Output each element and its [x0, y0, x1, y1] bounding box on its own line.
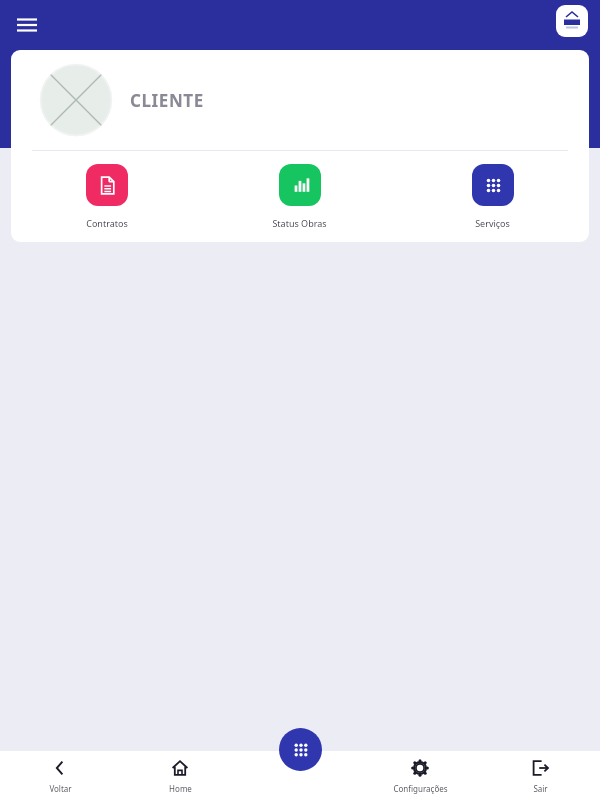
staticText: Status Obras: [272, 217, 327, 229]
staticText: CLIENTE: [130, 89, 204, 112]
staticText: Sair: [533, 783, 548, 794]
staticText: Home: [169, 783, 192, 794]
button[interactable]: Contratos: [11, 164, 203, 229]
button[interactable]: Serviços: [396, 164, 589, 229]
staticText: Configurações: [393, 783, 448, 794]
button[interactable]: Logo: [556, 5, 588, 37]
staticText: Contratos: [86, 217, 128, 229]
button[interactable]: Home: [120, 751, 240, 800]
staticText: Serviços: [475, 217, 510, 229]
button[interactable]: Status Obras: [203, 164, 396, 229]
button[interactable]: Sair: [480, 751, 600, 800]
button[interactable]: Configurações: [360, 751, 480, 800]
button[interactable]: CLIENTE: [11, 50, 589, 150]
button[interactable]: Menu: [10, 8, 44, 42]
button[interactable]: Voltar: [0, 751, 120, 800]
staticText: Voltar: [49, 783, 72, 794]
button[interactable]: Apps: [279, 728, 322, 771]
